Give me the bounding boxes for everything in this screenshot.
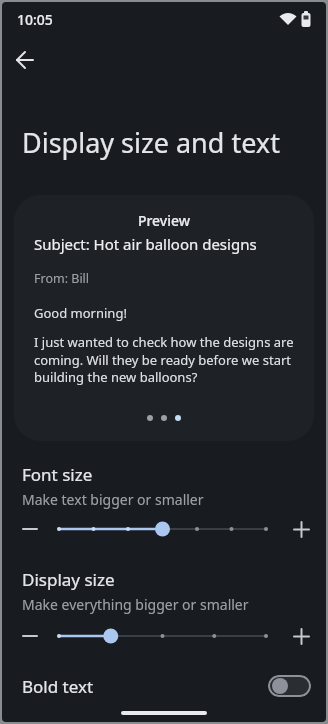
staticText: Make everything bigger or smaller xyxy=(22,595,249,614)
staticText: Bold text xyxy=(22,675,94,698)
button[interactable]: Display size xyxy=(2,568,326,651)
button[interactable] xyxy=(5,40,45,80)
button[interactable] xyxy=(287,514,315,544)
staticText: Display size and text xyxy=(22,124,280,161)
staticText: Good morning! xyxy=(34,304,127,322)
button[interactable] xyxy=(268,675,311,697)
staticText: Font size xyxy=(22,463,93,486)
staticText: Preview xyxy=(34,211,294,230)
button[interactable] xyxy=(59,514,266,544)
staticText: Display size xyxy=(22,568,115,591)
button[interactable] xyxy=(287,621,315,651)
staticText: Subject: Hot air balloon designs xyxy=(34,234,257,254)
staticText: 10:05 xyxy=(17,10,53,29)
button[interactable]: Bold text xyxy=(2,664,326,708)
button[interactable] xyxy=(59,621,266,651)
button[interactable] xyxy=(16,621,44,651)
button[interactable]: Font size xyxy=(2,463,326,544)
staticText: From: Bill xyxy=(34,270,90,287)
staticText: I just wanted to check how the designs a… xyxy=(34,333,294,386)
staticText: Make text bigger or smaller xyxy=(22,490,204,509)
button[interactable] xyxy=(16,514,44,544)
